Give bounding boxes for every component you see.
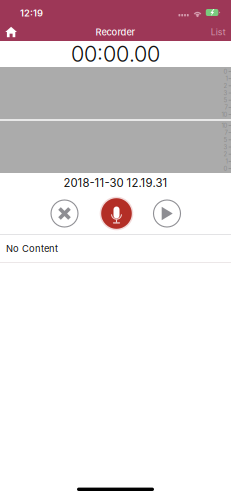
button[interactable]: Record	[99, 196, 133, 230]
staticText: 5	[224, 136, 228, 143]
staticText: 2	[224, 82, 228, 89]
button[interactable]: Play	[151, 198, 182, 229]
staticText: 3	[224, 143, 228, 151]
staticText: 2018-11-30 12.19.31	[63, 176, 167, 190]
staticText: No Content	[6, 243, 58, 254]
staticText: 10	[222, 122, 228, 129]
staticText: Recorder	[95, 26, 135, 38]
staticText: 5	[224, 96, 228, 104]
staticText: 10	[222, 111, 228, 118]
staticText: 1	[226, 158, 228, 165]
staticText: List	[211, 27, 226, 37]
staticText: 0	[224, 165, 228, 172]
staticText: 7	[225, 104, 228, 111]
staticText: 00:00.00	[71, 41, 160, 67]
staticText: 0	[224, 68, 228, 75]
staticText: 3	[224, 89, 228, 97]
staticText: 2	[224, 150, 228, 158]
staticText: 7	[225, 129, 228, 136]
button[interactable]: Home	[0, 22, 26, 42]
button[interactable]: No Content	[0, 234, 231, 262]
staticText: 12:19	[20, 7, 43, 19]
button[interactable]: List	[202, 22, 231, 42]
staticText: 1	[226, 75, 228, 82]
button[interactable]: Cancel	[49, 198, 80, 229]
